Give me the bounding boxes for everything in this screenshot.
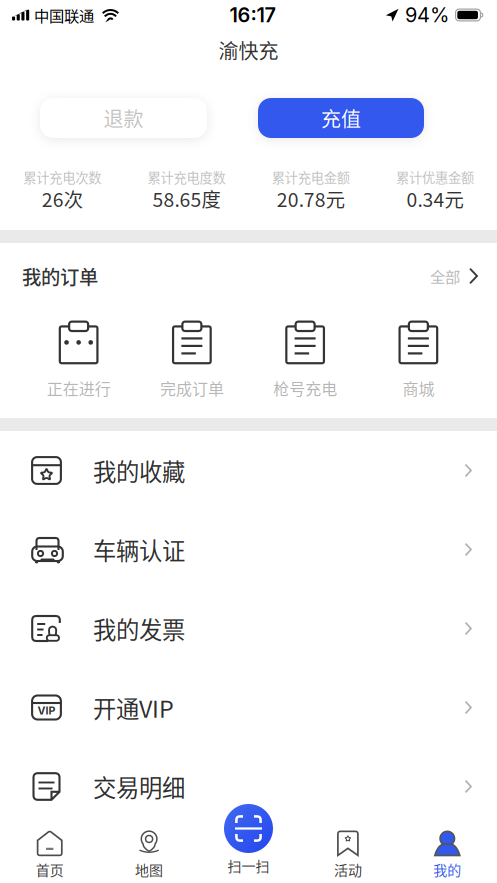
button[interactable]: 退款 <box>40 98 207 138</box>
button[interactable]: 扫一扫 <box>224 804 273 853</box>
staticText: 开通VIP <box>93 691 174 724</box>
button[interactable]: 首页 <box>0 826 99 883</box>
button[interactable]: 活动 <box>298 826 398 883</box>
button[interactable]: 枪号充电 <box>248 320 362 400</box>
staticText: 我的 <box>433 859 461 880</box>
button[interactable]: 商城 <box>362 320 475 400</box>
button[interactable]: 车辆认证 <box>0 510 497 589</box>
button[interactable]: 全部 <box>430 265 478 287</box>
button[interactable]: 完成订单 <box>135 320 248 400</box>
staticText: 16:17 <box>229 3 275 27</box>
staticText: 全部 <box>430 265 460 287</box>
staticText: 累计优惠金额 <box>396 167 474 187</box>
staticText: 活动 <box>334 859 362 880</box>
staticText: 商城 <box>402 376 434 400</box>
button[interactable]: 我的收藏 <box>0 431 497 510</box>
staticText: 扫一扫 <box>227 855 269 876</box>
staticText: 我的收藏 <box>93 454 185 487</box>
button[interactable]: 交易明细 <box>0 747 497 826</box>
staticText: 正在进行 <box>47 376 111 400</box>
button[interactable]: 我的 <box>398 826 497 883</box>
staticText: 58.65度 <box>152 184 220 212</box>
staticText: 充值 <box>321 103 361 132</box>
button[interactable]: 扫一扫 <box>199 826 298 883</box>
button[interactable]: 我的发票 <box>0 589 497 668</box>
staticText: 94% <box>405 3 449 27</box>
staticText: 中国联通 <box>34 4 94 26</box>
button[interactable]: 地图 <box>99 826 199 883</box>
staticText: 退款 <box>103 103 143 132</box>
staticText: 我的发票 <box>93 612 185 645</box>
staticText: 26次 <box>42 184 83 212</box>
staticText: 20.78元 <box>277 184 345 212</box>
staticText: 地图 <box>135 859 163 880</box>
staticText: 交易明细 <box>93 770 185 803</box>
staticText: 累计充电度数 <box>147 167 225 187</box>
staticText: 0.34元 <box>406 184 463 212</box>
staticText: 首页 <box>36 859 64 880</box>
staticText: 完成订单 <box>160 376 224 400</box>
button[interactable]: VIP <box>0 668 497 747</box>
staticText: 累计充电金额 <box>272 167 350 187</box>
staticText: VIP <box>37 704 55 717</box>
staticText: 我的订单 <box>22 262 98 290</box>
button[interactable]: 充值 <box>258 98 424 138</box>
button[interactable]: 正在进行 <box>22 320 135 400</box>
staticText: 枪号充电 <box>273 376 337 400</box>
staticText: 渝快充 <box>218 35 278 64</box>
staticText: 累计充电次数 <box>23 167 101 187</box>
staticText: 车辆认证 <box>93 533 185 566</box>
